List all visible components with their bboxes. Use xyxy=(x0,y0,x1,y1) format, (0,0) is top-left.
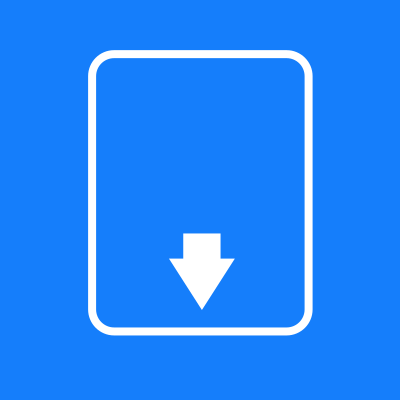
button[interactable]: Download xyxy=(0,0,400,400)
